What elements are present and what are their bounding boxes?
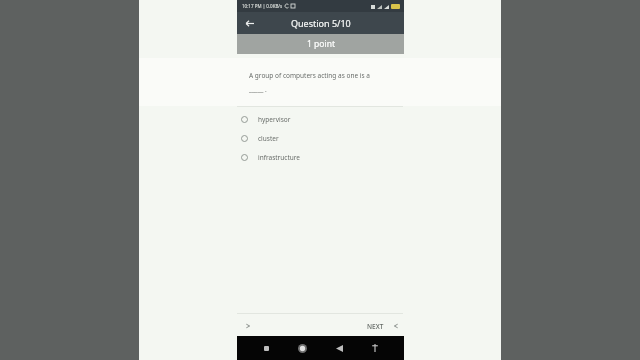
button[interactable]: infrastructure — [139, 148, 501, 167]
button[interactable]: Home — [295, 341, 309, 355]
staticText: 1 point — [307, 38, 335, 50]
staticText: NEXT — [367, 322, 384, 331]
staticText: cluster — [258, 134, 279, 143]
button[interactable]: NEXT — [367, 321, 401, 331]
staticText: A group of computers acting as one is a — [249, 71, 370, 80]
staticText: 10:17 PM | 0.0KB/s — [242, 3, 283, 9]
staticText: infrastructure — [258, 153, 300, 162]
staticText: Question 5/10 — [291, 17, 351, 29]
button[interactable]: Previous — [239, 317, 257, 335]
button[interactable]: Back — [332, 341, 346, 355]
button[interactable]: Recents — [259, 341, 273, 355]
staticText: _____ . — [249, 85, 267, 94]
button[interactable]: hypervisor — [139, 110, 501, 129]
button[interactable]: Back — [241, 15, 257, 31]
button[interactable]: Keyboard — [368, 341, 382, 355]
button[interactable]: cluster — [139, 129, 501, 148]
staticText: hypervisor — [258, 115, 291, 124]
